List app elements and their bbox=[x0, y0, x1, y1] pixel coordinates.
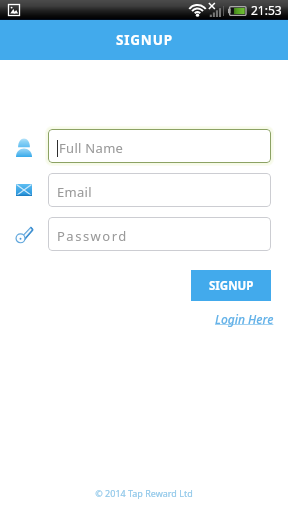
other: Password bbox=[0, 217, 48, 251]
staticText: 21:53 bbox=[251, 2, 282, 18]
button[interactable]: Login Here bbox=[215, 311, 274, 327]
button[interactable]: SIGNUP bbox=[191, 270, 271, 301]
staticText: Email bbox=[57, 183, 92, 201]
other: Email bbox=[0, 173, 48, 207]
staticText: Full Name bbox=[59, 139, 124, 157]
button[interactable]: Password bbox=[48, 217, 271, 251]
staticText: Password bbox=[57, 227, 128, 245]
button[interactable]: Email bbox=[48, 173, 271, 207]
other: Full name bbox=[0, 129, 48, 163]
staticText: SIGNUP bbox=[116, 31, 173, 49]
staticText: © 2014 Tap Reward Ltd bbox=[95, 487, 193, 499]
staticText: Login Here bbox=[215, 311, 274, 327]
staticText: SIGNUP bbox=[209, 278, 254, 294]
button[interactable]: Full Name bbox=[48, 129, 271, 163]
